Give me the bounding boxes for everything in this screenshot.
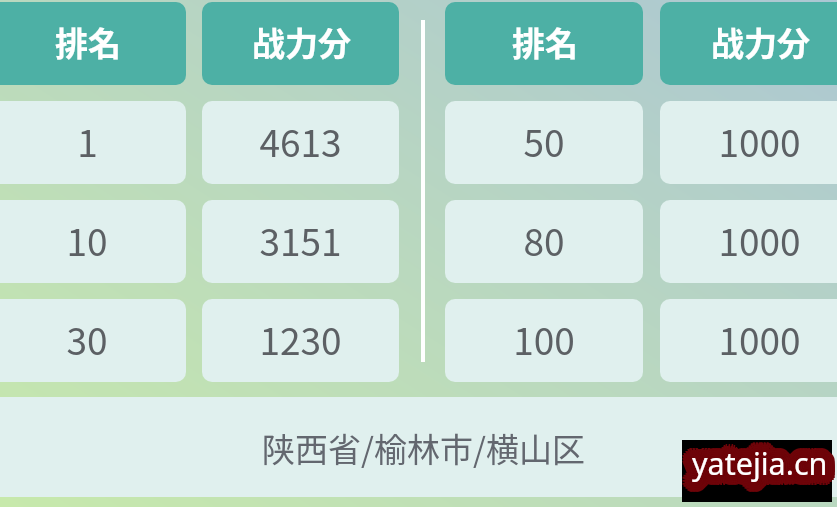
staticText: yatejia.cn (697, 445, 833, 487)
button[interactable]: 战力分 (660, 2, 837, 85)
button[interactable]: 1000 (660, 200, 837, 283)
staticText: yatejia.cn (690, 445, 826, 487)
staticText: 1000 (718, 114, 801, 168)
button[interactable]: 1230 (202, 299, 399, 382)
staticText: yatejia.cn (692, 438, 828, 480)
staticText: yatejia.cn (694, 434, 830, 476)
staticText: yatejia.cn (700, 442, 836, 484)
staticText: yatejia.cn (694, 445, 830, 487)
staticText: yatejia.cn (697, 433, 833, 475)
staticText: yatejia.cn (683, 437, 819, 479)
staticText: yatejia.cn (693, 438, 829, 480)
staticText: yatejia.cn (698, 442, 834, 484)
staticText: 陕西省/榆林市/横山区 (262, 424, 585, 472)
staticText: yatejia.cn (696, 446, 832, 488)
staticText: yatejia.cn (694, 443, 830, 485)
staticText: yatejia.cn (689, 432, 825, 474)
staticText: yatejia.cn (700, 440, 836, 482)
staticText: yatejia.cn (689, 452, 825, 494)
staticText: yatejia.cn (691, 443, 827, 485)
button[interactable]: 4613 (202, 101, 399, 184)
staticText: yatejia.cn (695, 439, 831, 481)
staticText: yatejia.cn (685, 446, 821, 488)
staticText: 30 (66, 312, 108, 366)
staticText: yatejia.cn (700, 444, 836, 486)
staticText: yatejia.cn (688, 435, 824, 477)
staticText: yatejia.cn (691, 444, 827, 486)
staticText: yatejia.cn (686, 440, 822, 482)
staticText: yatejia.cn (691, 444, 827, 486)
staticText: yatejia.cn (688, 438, 824, 480)
staticText: yatejia.cn (688, 449, 824, 491)
staticText: yatejia.cn (692, 436, 828, 478)
staticText: yatejia.cn (692, 444, 828, 486)
staticText: yatejia.cn (686, 436, 822, 478)
staticText: 排名 (512, 18, 578, 66)
staticText: yatejia.cn (686, 444, 822, 486)
staticText: yatejia.cn (688, 442, 824, 484)
button[interactable]: 1000 (660, 299, 837, 382)
staticText: yatejia.cn (693, 440, 829, 482)
button[interactable]: 1 (0, 101, 186, 184)
button[interactable]: 100 (445, 299, 643, 382)
staticText: yatejia.cn (695, 445, 831, 487)
staticText: yatejia.cn (687, 439, 823, 481)
button[interactable]: 50 (445, 101, 643, 184)
staticText: yatejia.cn (689, 445, 825, 487)
staticText: yatejia.cn (682, 442, 818, 484)
staticText: yatejia.cn (683, 447, 819, 489)
button[interactable]: 战力分 (202, 2, 399, 85)
staticText: yatejia.cn (695, 437, 831, 479)
staticText: yatejia.cn (690, 434, 826, 476)
staticText: yatejia.cn (693, 444, 829, 486)
button[interactable]: 80 (445, 200, 643, 283)
staticText: yatejia.cn (702, 445, 837, 487)
staticText: yatejia.cn (698, 440, 834, 482)
staticText: yatejia.cn (690, 448, 826, 490)
staticText: yatejia.cn (690, 441, 826, 483)
button[interactable]: 3151 (202, 200, 399, 283)
staticText: yatejia.cn (699, 449, 835, 491)
staticText: yatejia.cn (692, 434, 828, 476)
staticText: yatejia.cn (694, 441, 830, 483)
staticText: yatejia.cn (691, 440, 827, 482)
staticText: yatejia.cn (690, 441, 826, 483)
staticText: yatejia.cn (684, 444, 820, 486)
staticText: yatejia.cn (699, 446, 835, 488)
button[interactable]: 1000 (660, 101, 837, 184)
staticText: yatejia.cn (699, 438, 835, 480)
button[interactable]: 10 (0, 200, 186, 283)
staticText: yatejia.cn (689, 440, 825, 482)
staticText: yatejia.cn (687, 445, 823, 487)
staticText: 1230 (259, 312, 342, 366)
staticText: yatejia.cn (692, 442, 828, 484)
staticText: yatejia.cn (695, 452, 831, 494)
staticText: yatejia.cn (696, 449, 832, 491)
staticText: 1000 (718, 213, 801, 267)
staticText: yatejia.cn (692, 440, 828, 482)
staticText: yatejia.cn (684, 440, 820, 482)
staticText: yatejia.cn (685, 438, 821, 480)
staticText: yatejia.cn (694, 439, 830, 481)
staticText: yatejia.cn (702, 442, 837, 484)
staticText: yatejia.cn (701, 447, 837, 489)
staticText: 4613 (259, 114, 342, 168)
staticText: yatejia.cn (694, 436, 830, 478)
button[interactable]: 30 (0, 299, 186, 382)
staticText: 排名 (55, 18, 121, 66)
staticText: 100 (513, 312, 575, 366)
staticText: yatejia.cn (697, 451, 833, 493)
staticText: yatejia.cn (692, 446, 828, 488)
staticText: yatejia.cn (698, 444, 834, 486)
staticText: yatejia.cn (686, 448, 822, 490)
staticText: 1000 (718, 312, 801, 366)
staticText: yatejia.cn (687, 451, 823, 493)
staticText: yatejia.cn (696, 438, 832, 480)
staticText: yatejia.cn (691, 440, 827, 482)
button[interactable]: 排名 (0, 2, 186, 85)
staticText: yatejia.cn (692, 450, 828, 492)
staticText: yatejia.cn (693, 446, 829, 488)
button[interactable]: 排名 (445, 2, 643, 85)
staticText: yatejia.cn (699, 435, 835, 477)
staticText: 10 (66, 213, 108, 267)
